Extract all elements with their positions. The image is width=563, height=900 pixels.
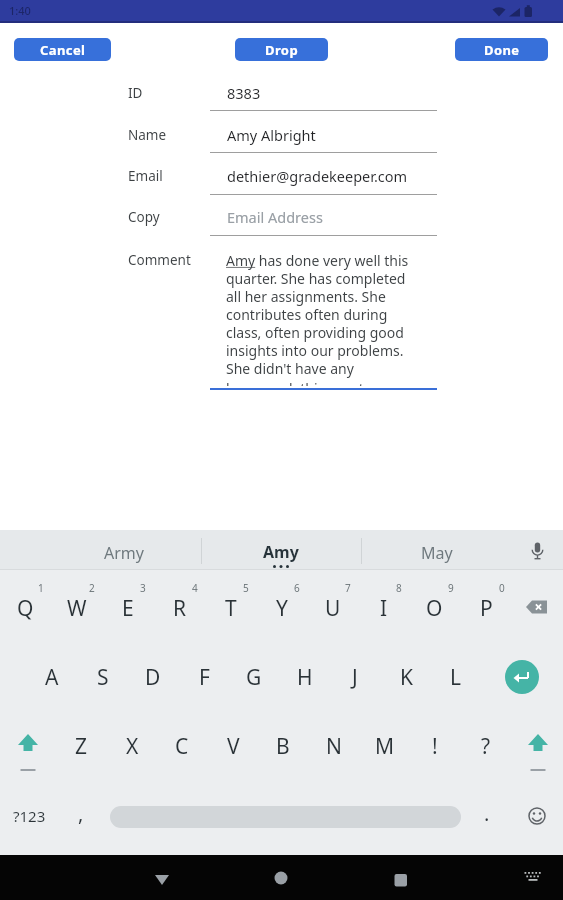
- staticText: I: [380, 594, 388, 623]
- button[interactable]: [0, 530, 563, 855]
- staticText: homework this quarter: [226, 379, 378, 386]
- staticText: N: [326, 732, 342, 761]
- staticText: M: [375, 732, 395, 761]
- staticText: C: [175, 732, 189, 761]
- staticText: Army: [104, 542, 144, 564]
- staticText: Q: [17, 594, 34, 623]
- staticText: W: [67, 594, 87, 623]
- staticText: all her assignments. She: [226, 287, 386, 306]
- staticText: ?: [481, 732, 491, 761]
- staticText: quarter. She has completed: [226, 269, 406, 288]
- button[interactable]: [524, 868, 544, 900]
- staticText: !: [432, 732, 438, 761]
- staticText: insights into our problems.: [226, 341, 404, 360]
- staticText: 8: [396, 581, 402, 595]
- staticText: O: [426, 594, 443, 623]
- staticText: 1:40: [9, 3, 31, 18]
- button[interactable]: [521, 599, 553, 615]
- staticText: Copy: [128, 208, 160, 226]
- staticText: .: [484, 800, 490, 827]
- staticText: dethier@gradekeeper.com: [227, 166, 408, 186]
- staticText: Email Address: [227, 207, 323, 227]
- staticText: 0: [499, 581, 505, 595]
- staticText: 1: [38, 581, 44, 595]
- staticText: 3: [140, 581, 146, 595]
- staticText: 2: [89, 581, 95, 595]
- staticText: E: [122, 594, 134, 623]
- staticText: Z: [75, 732, 88, 761]
- staticText: Cancel: [40, 41, 86, 59]
- staticText: Name: [128, 126, 167, 144]
- staticText: 8383: [227, 83, 261, 103]
- staticText: contributes often during: [226, 305, 388, 324]
- button[interactable]: [505, 660, 539, 694]
- staticText: ?123: [13, 806, 46, 826]
- staticText: A: [45, 663, 59, 692]
- staticText: Email: [128, 167, 163, 185]
- staticText: 6: [294, 581, 300, 595]
- staticText: Amy Albright: [227, 125, 316, 145]
- staticText: 4: [192, 581, 198, 595]
- button[interactable]: Done: [455, 38, 548, 61]
- staticText: Done: [484, 41, 520, 59]
- staticText: Drop: [265, 41, 299, 59]
- staticText: L: [450, 663, 462, 692]
- button[interactable]: [154, 868, 170, 900]
- staticText: T: [225, 594, 237, 623]
- staticText: K: [400, 663, 413, 692]
- staticText: V: [227, 732, 240, 761]
- button[interactable]: Cancel: [14, 38, 111, 61]
- staticText: X: [126, 732, 139, 761]
- staticText: Comment: [128, 251, 191, 269]
- staticText: P: [480, 594, 493, 623]
- staticText: U: [325, 594, 341, 623]
- staticText: Y: [276, 594, 288, 623]
- staticText: ,: [78, 800, 84, 827]
- button[interactable]: [14, 732, 42, 774]
- button[interactable]: [524, 732, 552, 774]
- staticText: F: [199, 663, 210, 692]
- button[interactable]: [393, 868, 409, 900]
- staticText: G: [246, 663, 262, 692]
- staticText: B: [276, 732, 290, 761]
- staticText: S: [97, 663, 109, 692]
- staticText: ID: [128, 84, 143, 102]
- staticText: 9: [448, 581, 454, 595]
- staticText: H: [297, 663, 313, 692]
- staticText: class, often providing good: [226, 323, 404, 342]
- button[interactable]: [529, 541, 547, 563]
- staticText: May: [421, 542, 453, 564]
- staticText: She didn't have any: [226, 359, 354, 378]
- staticText: J: [352, 663, 358, 692]
- staticText: 7: [345, 581, 351, 595]
- staticText: Amy has done very well this: [226, 251, 409, 270]
- button[interactable]: [527, 806, 547, 826]
- button[interactable]: Drop: [235, 38, 328, 61]
- staticText: 5: [243, 581, 249, 595]
- staticText: Amy: [263, 541, 299, 563]
- staticText: R: [173, 594, 187, 623]
- button[interactable]: [273, 868, 289, 900]
- staticText: D: [145, 663, 161, 692]
